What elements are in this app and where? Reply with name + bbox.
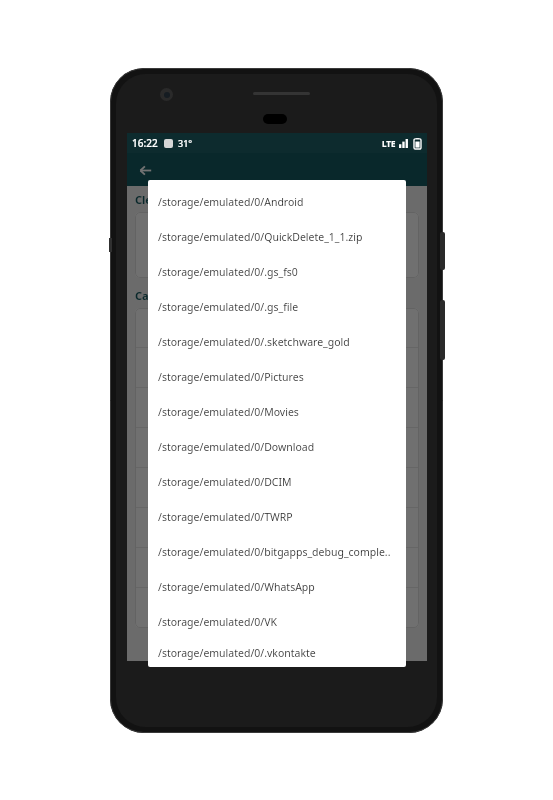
button[interactable] bbox=[135, 308, 419, 347]
staticText: /storage/emulated/0/QuickDelete_1_1.zip bbox=[158, 230, 363, 244]
button[interactable]: /storage/emulated/0/.sketchware_gold bbox=[148, 324, 406, 359]
staticText: /storage/emulated/0/TWRP bbox=[158, 510, 293, 524]
button[interactable] bbox=[135, 588, 419, 627]
button[interactable] bbox=[135, 548, 419, 587]
button[interactable]: /storage/emulated/0/Download bbox=[148, 429, 406, 464]
staticText: /storage/emulated/0/Pictures bbox=[158, 370, 304, 384]
button[interactable] bbox=[135, 388, 419, 427]
staticText: /storage/emulated/0/.vkontakte bbox=[158, 646, 316, 660]
button[interactable]: /storage/emulated/0/Pictures bbox=[148, 359, 406, 394]
button[interactable] bbox=[135, 212, 419, 278]
staticText: /storage/emulated/0/Android bbox=[158, 195, 304, 209]
staticText: Cache bbox=[135, 288, 169, 303]
staticText: 31° bbox=[178, 137, 193, 149]
button[interactable]: /storage/emulated/0/bitgapps_debug_compl… bbox=[148, 534, 406, 569]
button[interactable]: /storage/emulated/0/Android bbox=[148, 184, 406, 219]
staticText: LTE bbox=[382, 138, 396, 149]
button[interactable] bbox=[135, 508, 419, 547]
staticText: Cleaner bbox=[135, 192, 178, 207]
button[interactable]: /storage/emulated/0/QuickDelete_1_1.zip bbox=[148, 219, 406, 254]
button[interactable]: /storage/emulated/0/TWRP bbox=[148, 499, 406, 534]
staticText: /storage/emulated/0/Movies bbox=[158, 405, 299, 419]
button[interactable]: /storage/emulated/0/VK bbox=[148, 604, 406, 639]
button[interactable]: /storage/emulated/0/.vkontakte bbox=[148, 639, 406, 667]
staticText: 16:22 bbox=[132, 136, 158, 150]
staticText: /storage/emulated/0/Download bbox=[158, 440, 315, 454]
staticText: /storage/emulated/0/.gs_file bbox=[158, 300, 299, 314]
staticText: /storage/emulated/0/DCIM bbox=[158, 475, 292, 489]
button[interactable]: Back bbox=[133, 158, 157, 182]
button[interactable]: /storage/emulated/0/.gs_file bbox=[148, 289, 406, 324]
button[interactable]: /storage/emulated/0/.gs_fs0 bbox=[148, 254, 406, 289]
button[interactable]: /storage/emulated/0/WhatsApp bbox=[148, 569, 406, 604]
staticText: /storage/emulated/0/VK bbox=[158, 615, 277, 629]
staticText: /storage/emulated/0/.gs_fs0 bbox=[158, 265, 298, 279]
staticText: /storage/emulated/0/bitgapps_debug_compl… bbox=[158, 545, 391, 559]
button[interactable] bbox=[135, 348, 419, 387]
button[interactable]: /storage/emulated/0/Movies bbox=[148, 394, 406, 429]
button[interactable] bbox=[135, 428, 419, 467]
staticText: /storage/emulated/0/WhatsApp bbox=[158, 580, 315, 594]
button[interactable]: /storage/emulated/0/DCIM bbox=[148, 464, 406, 499]
staticText: /storage/emulated/0/.sketchware_gold bbox=[158, 335, 350, 349]
button[interactable] bbox=[135, 468, 419, 507]
